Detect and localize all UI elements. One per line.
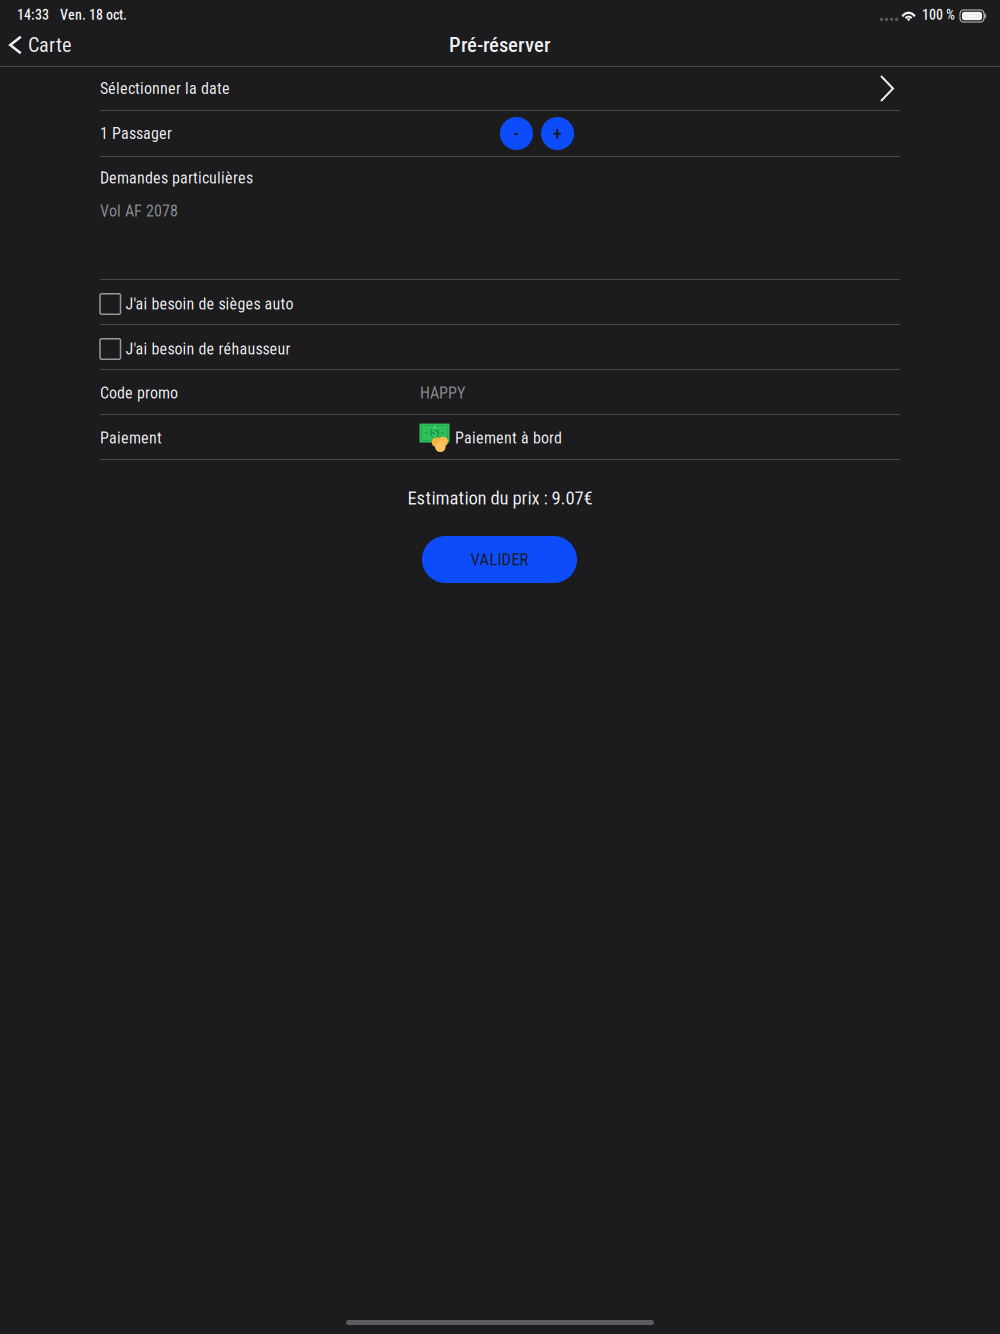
button[interactable]: Retirer un passager [500, 117, 533, 150]
staticText: Carte [28, 33, 72, 57]
staticText: - [513, 123, 519, 144]
button[interactable]: J'ai besoin de réhausseur [100, 327, 900, 371]
staticText: J'ai besoin de sièges auto [125, 295, 293, 313]
button[interactable]: Carte [0, 24, 160, 66]
staticText: Sélectionner la date [100, 79, 230, 98]
staticText: Code promo [100, 384, 178, 402]
staticText: + [553, 123, 562, 144]
button[interactable]: VALIDER [422, 536, 577, 583]
staticText: Ven. 18 oct. [60, 7, 127, 23]
button[interactable]: Ajouter un passager [541, 117, 574, 150]
staticText: 1 Passager [100, 124, 172, 143]
staticText: HAPPY [420, 384, 465, 402]
staticText: 14:33 [17, 7, 49, 23]
staticText: 100 % [922, 7, 955, 23]
staticText: VALIDER [470, 550, 528, 569]
button[interactable]: Demandes particulières [100, 168, 900, 278]
staticText: Pré-réserver [449, 33, 551, 57]
button[interactable]: Sélectionner la date [100, 67, 900, 110]
staticText: Estimation du prix : 9.07€ [407, 487, 592, 509]
staticText: Paiement à bord [455, 429, 562, 447]
button[interactable]: Paiement [100, 416, 900, 460]
staticText: Demandes particulières [100, 169, 253, 187]
button[interactable]: Code promo [100, 371, 900, 415]
button[interactable]: J'ai besoin de sièges auto [100, 282, 900, 326]
staticText: $ [432, 425, 438, 439]
staticText: J'ai besoin de réhausseur [125, 340, 290, 358]
staticText: Paiement [100, 429, 162, 447]
staticText: Vol AF 2078 [100, 202, 178, 220]
